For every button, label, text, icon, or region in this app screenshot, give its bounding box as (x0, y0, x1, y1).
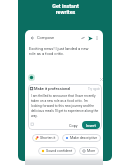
button[interactable]: Close (98, 76, 103, 82)
button[interactable]: More options (94, 35, 100, 41)
button[interactable]: Insert (82, 121, 100, 129)
staticText: Sound confident (46, 149, 73, 153)
staticText: Copy (69, 123, 78, 127)
staticText: Exciting news! I just landed a new role … (29, 46, 89, 56)
button[interactable]: Send (87, 35, 93, 41)
staticText: Insert (86, 123, 96, 127)
staticText: Get instant rewrites (52, 3, 79, 16)
button[interactable]: More (79, 147, 99, 155)
button[interactable]: Copy result (30, 122, 35, 127)
button[interactable]: Sound confident (38, 147, 76, 155)
button[interactable]: Attach file (80, 35, 86, 41)
staticText: Make it professional (34, 86, 71, 91)
button[interactable]: Back (29, 35, 35, 41)
button[interactable]: Make descriptive (62, 134, 101, 142)
staticText: I am thrilled to announce that I have re… (31, 94, 99, 118)
button[interactable]: Copy (67, 122, 80, 128)
staticText: More (87, 149, 96, 153)
staticText: Try again (88, 87, 101, 91)
button[interactable]: Shorten it (32, 134, 59, 142)
staticText: Compose (37, 35, 55, 40)
staticText: Shorten it (40, 136, 56, 140)
staticText: Make descriptive (70, 136, 98, 140)
